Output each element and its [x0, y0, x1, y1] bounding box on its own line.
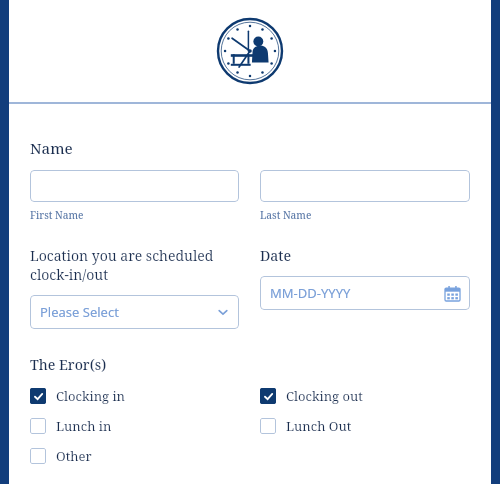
- button[interactable]: MM-DD-YYYY: [260, 276, 470, 310]
- staticText: Lunch in: [56, 417, 112, 435]
- staticText: Location you are scheduled clock-in/out: [30, 246, 239, 284]
- button[interactable]: Open calendar: [445, 286, 460, 301]
- staticText: Last Name: [260, 208, 312, 222]
- button[interactable]: Lunch Out: [260, 415, 470, 437]
- staticText: Lunch Out: [286, 417, 352, 435]
- other: Time clock logo: [217, 18, 283, 84]
- button[interactable]: Other: [30, 445, 239, 467]
- staticText: Other: [56, 447, 92, 465]
- button[interactable]: Please Select: [30, 295, 239, 329]
- button[interactable]: [30, 170, 239, 202]
- staticText: Clocking out: [286, 387, 363, 405]
- staticText: The Eror(s): [30, 355, 107, 374]
- staticText: Name: [30, 138, 73, 158]
- staticText: First Name: [30, 208, 84, 222]
- staticText: Clocking in: [56, 387, 125, 405]
- staticText: MM-DD-YYYY: [270, 284, 445, 302]
- button[interactable]: Clocking in: [30, 385, 239, 407]
- staticText: Please Select: [40, 303, 217, 321]
- button[interactable]: Clocking out: [260, 385, 470, 407]
- staticText: Date: [260, 246, 292, 265]
- button[interactable]: [260, 170, 470, 202]
- button[interactable]: Lunch in: [30, 415, 239, 437]
